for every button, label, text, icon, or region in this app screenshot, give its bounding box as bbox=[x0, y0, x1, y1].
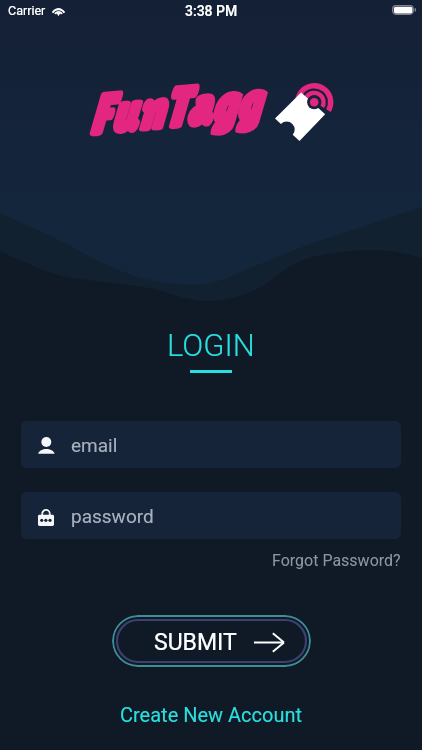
staticText: email bbox=[71, 434, 118, 456]
staticText: SUBMIT bbox=[154, 629, 237, 656]
button[interactable]: email bbox=[21, 421, 401, 468]
button[interactable]: Create New Account bbox=[112, 699, 311, 730]
staticText: LOGIN bbox=[167, 327, 255, 363]
staticText: FunTagg bbox=[83, 69, 260, 147]
button[interactable]: SUBMIT bbox=[112, 615, 311, 667]
button[interactable]: Forgot Password? bbox=[272, 539, 401, 574]
staticText: Carrier bbox=[8, 3, 46, 18]
button[interactable]: password bbox=[21, 492, 401, 539]
staticText: 3:38 PM bbox=[185, 3, 238, 19]
staticText: password bbox=[71, 505, 154, 527]
